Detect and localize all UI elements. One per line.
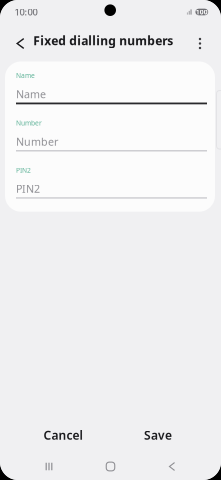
staticText: Cancel xyxy=(43,427,82,443)
staticText: PIN2 xyxy=(16,166,31,175)
staticText: 10:00 xyxy=(14,6,37,18)
button[interactable]: Save xyxy=(110,422,205,448)
button[interactable]: Back xyxy=(141,456,203,476)
staticText: Number xyxy=(16,134,58,149)
staticText: Fixed dialling numbers xyxy=(33,32,173,48)
button[interactable]: Back xyxy=(8,25,33,55)
staticText: Save xyxy=(144,427,172,443)
staticText: Name xyxy=(16,87,46,101)
staticText: 100 xyxy=(196,8,208,16)
button[interactable]: Recents xyxy=(18,456,80,476)
staticText: PIN2 xyxy=(16,182,40,196)
button[interactable]: Cancel xyxy=(15,422,110,448)
button[interactable]: Home xyxy=(80,456,141,476)
staticText: Number xyxy=(16,119,42,127)
button[interactable]: More options xyxy=(189,25,211,55)
staticText: Name xyxy=(16,71,35,80)
